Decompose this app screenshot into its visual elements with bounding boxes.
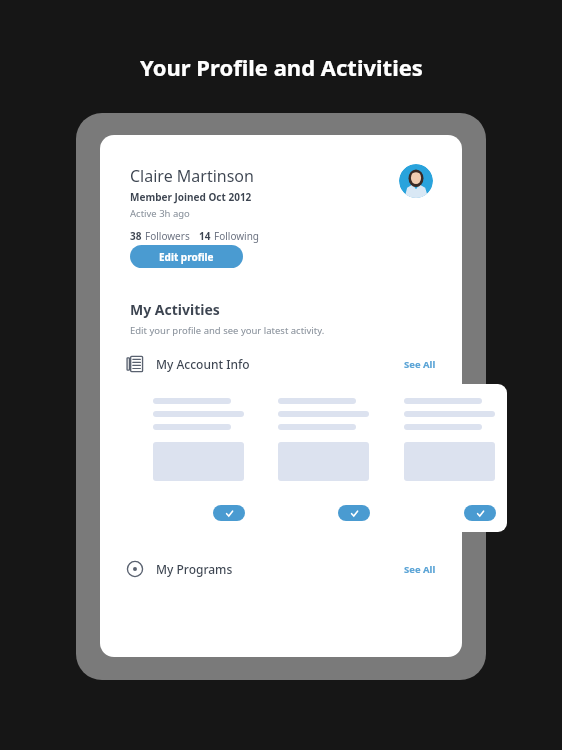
button[interactable]: Profile photo (399, 164, 433, 198)
button[interactable]: Edit profile (130, 245, 243, 268)
other: My Account Info (126, 355, 144, 373)
other: My Programs (126, 560, 144, 578)
staticText: Followers (145, 229, 190, 243)
button[interactable]: Completed (213, 505, 245, 521)
staticText: My Account Info (156, 356, 250, 372)
staticText: Member Joined Oct 2012 (130, 190, 252, 204)
staticText: 14 (199, 229, 211, 243)
button[interactable]: My Account Info (126, 351, 436, 377)
staticText: Your Profile and Activities (140, 52, 423, 82)
staticText: Following (214, 229, 260, 243)
staticText: See All (404, 358, 436, 371)
staticText: Active 3h ago (130, 207, 190, 220)
staticText: See All (404, 563, 436, 576)
button[interactable]: Completed (338, 505, 370, 521)
button[interactable]: Completed (266, 384, 381, 532)
staticText: Edit your profile and see your latest ac… (130, 324, 325, 337)
staticText: Edit profile (159, 250, 214, 264)
staticText: My Programs (156, 561, 233, 577)
button[interactable]: Completed (464, 505, 496, 521)
button[interactable]: Completed (392, 384, 507, 532)
button[interactable]: Completed (141, 384, 256, 532)
staticText: 38 (130, 229, 142, 243)
staticText: Claire Martinson (130, 165, 254, 187)
button[interactable]: My Programs (126, 556, 436, 582)
staticText: My Activities (130, 300, 220, 319)
